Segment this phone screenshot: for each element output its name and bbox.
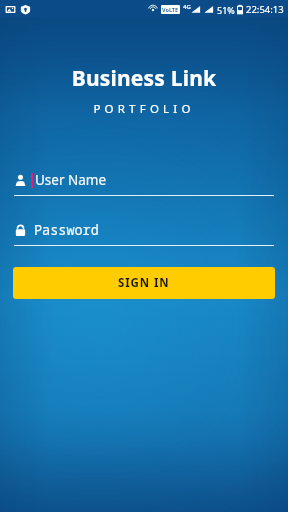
staticText: Password xyxy=(34,221,99,239)
other: Password xyxy=(14,224,27,237)
staticText: VoLTE xyxy=(162,6,179,13)
button[interactable]: User name xyxy=(14,169,274,196)
staticText: 4G xyxy=(183,3,191,11)
staticText: User Name xyxy=(35,171,107,189)
staticText: 51% xyxy=(217,4,235,16)
staticText: 22:54:13 xyxy=(246,3,284,16)
staticText: Business Link xyxy=(0,64,288,93)
button[interactable]: Password xyxy=(14,219,274,246)
other: User name xyxy=(14,174,27,187)
staticText: PORTFOLIO xyxy=(0,101,288,117)
staticText: SIGN IN xyxy=(118,275,170,291)
button[interactable]: SIGN IN xyxy=(13,267,275,299)
